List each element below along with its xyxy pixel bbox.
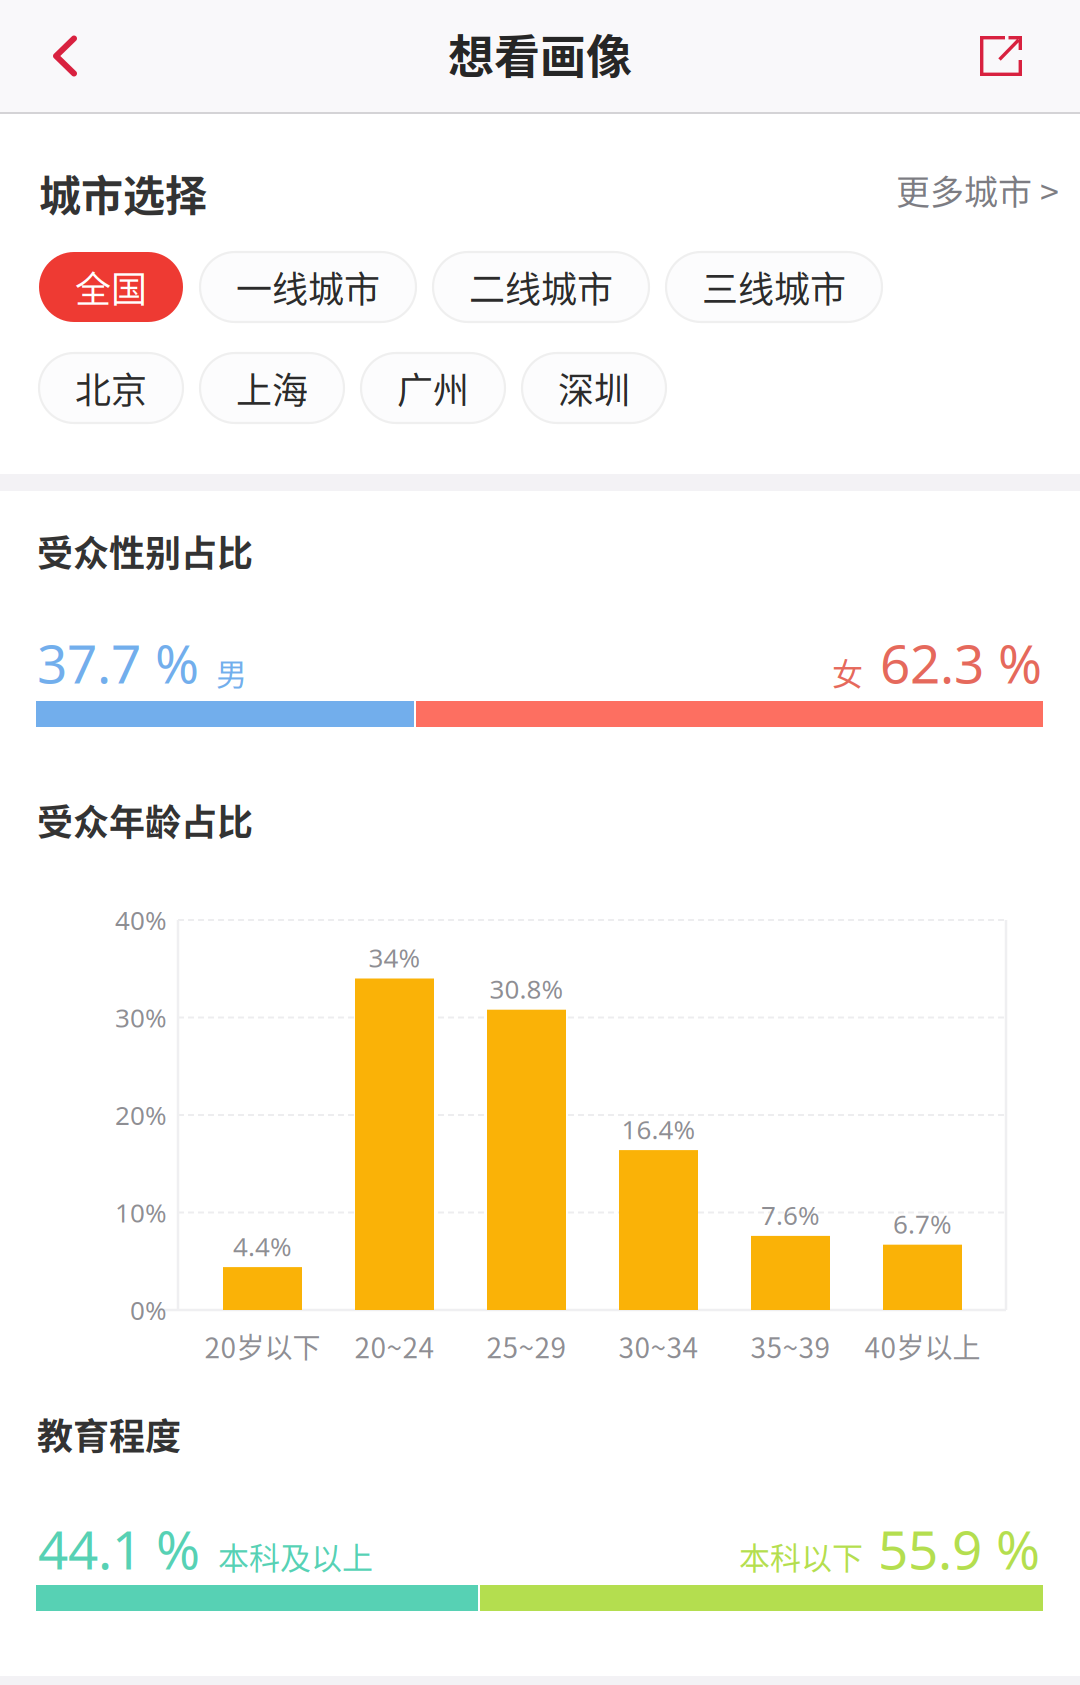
staticText: 全国 [75, 261, 147, 313]
staticText: 25~29 [486, 1326, 566, 1366]
button[interactable]: 更多城市 > [869, 162, 1059, 218]
staticText: 北京 [75, 362, 147, 414]
button[interactable]: 上海 [200, 353, 344, 423]
button[interactable]: 返回 [17, 0, 113, 112]
button[interactable]: 全国 [39, 252, 183, 322]
button[interactable]: 广州 [361, 353, 505, 423]
staticText: 20~24 [354, 1326, 434, 1366]
staticText: 20岁以下 [204, 1326, 320, 1366]
staticText: 40岁以上 [864, 1326, 980, 1366]
staticText: 10% [115, 1195, 167, 1230]
staticText: 30.8% [489, 971, 563, 1006]
staticText: 本科以下 [739, 1534, 863, 1578]
staticText: 55.9 % [878, 1513, 1040, 1585]
staticText: 男 [216, 650, 247, 694]
staticText: 更多城市 > [896, 165, 1059, 215]
button[interactable]: 二线城市 [433, 252, 649, 322]
button[interactable]: 一线城市 [200, 252, 416, 322]
staticText: 深圳 [558, 362, 630, 414]
staticText: 0% [130, 1292, 167, 1328]
staticText: 16.4% [621, 1111, 695, 1147]
staticText: 30~34 [618, 1326, 698, 1366]
staticText: 6.7% [893, 1206, 952, 1241]
staticText: 上海 [236, 362, 308, 414]
button[interactable]: 深圳 [522, 353, 666, 423]
staticText: 女 [832, 650, 863, 694]
staticText: 30% [115, 1000, 167, 1035]
staticText: 广州 [397, 362, 469, 414]
staticText: 一线城市 [236, 261, 380, 313]
staticText: 本科及以上 [218, 1534, 373, 1578]
staticText: 教育程度 [37, 1408, 181, 1460]
button[interactable]: 三线城市 [666, 252, 882, 322]
staticText: 44.1 % [38, 1513, 200, 1585]
staticText: 受众年龄占比 [37, 794, 253, 846]
staticText: 7.6% [761, 1197, 820, 1233]
staticText: 40% [115, 902, 167, 938]
button[interactable]: 分享 [946, 0, 1056, 112]
staticText: 62.3 % [880, 627, 1042, 699]
staticText: 城市选择 [39, 163, 207, 223]
staticText: 37.7 % [37, 627, 199, 699]
staticText: 想看画像 [448, 20, 632, 86]
staticText: 35~39 [750, 1326, 830, 1366]
staticText: 受众性别占比 [37, 525, 253, 577]
staticText: 4.4% [233, 1228, 292, 1264]
button[interactable]: 北京 [39, 353, 183, 423]
staticText: 20% [115, 1097, 167, 1133]
staticText: 三线城市 [702, 261, 846, 313]
staticText: 二线城市 [469, 261, 613, 313]
staticText: 34% [368, 940, 420, 975]
